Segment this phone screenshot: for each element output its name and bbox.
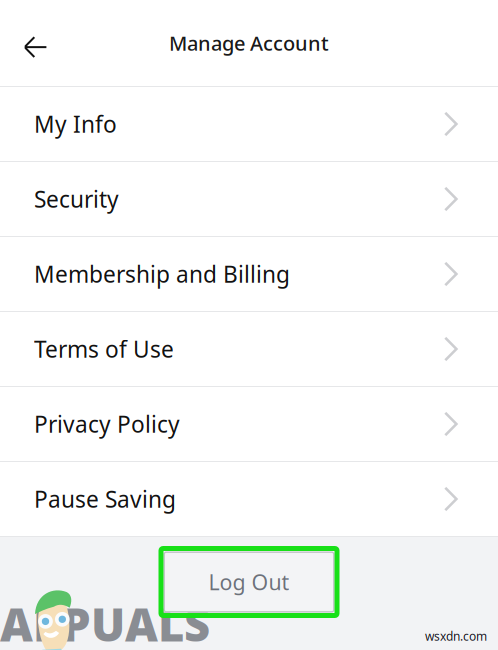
- button[interactable]: Log Out: [163, 551, 334, 612]
- staticText: Log Out: [208, 568, 289, 596]
- button[interactable]: Pause Saving: [0, 462, 498, 537]
- staticText: Privacy Policy: [34, 409, 180, 439]
- staticText: My Info: [34, 109, 117, 139]
- staticText: Membership and Billing: [34, 259, 290, 289]
- staticText: wsxdn.com: [425, 628, 487, 644]
- button[interactable]: Terms of Use: [0, 312, 498, 387]
- staticText: Manage Account: [169, 30, 329, 56]
- button[interactable]: Back: [5, 15, 66, 79]
- button[interactable]: Membership and Billing: [0, 237, 498, 312]
- staticText: Pause Saving: [34, 484, 176, 514]
- staticText: Security: [34, 184, 119, 214]
- staticText: Terms of Use: [34, 334, 174, 364]
- staticText: APPUALS: [0, 594, 210, 650]
- button[interactable]: My Info: [0, 87, 498, 162]
- button[interactable]: Privacy Policy: [0, 387, 498, 462]
- button[interactable]: Security: [0, 162, 498, 237]
